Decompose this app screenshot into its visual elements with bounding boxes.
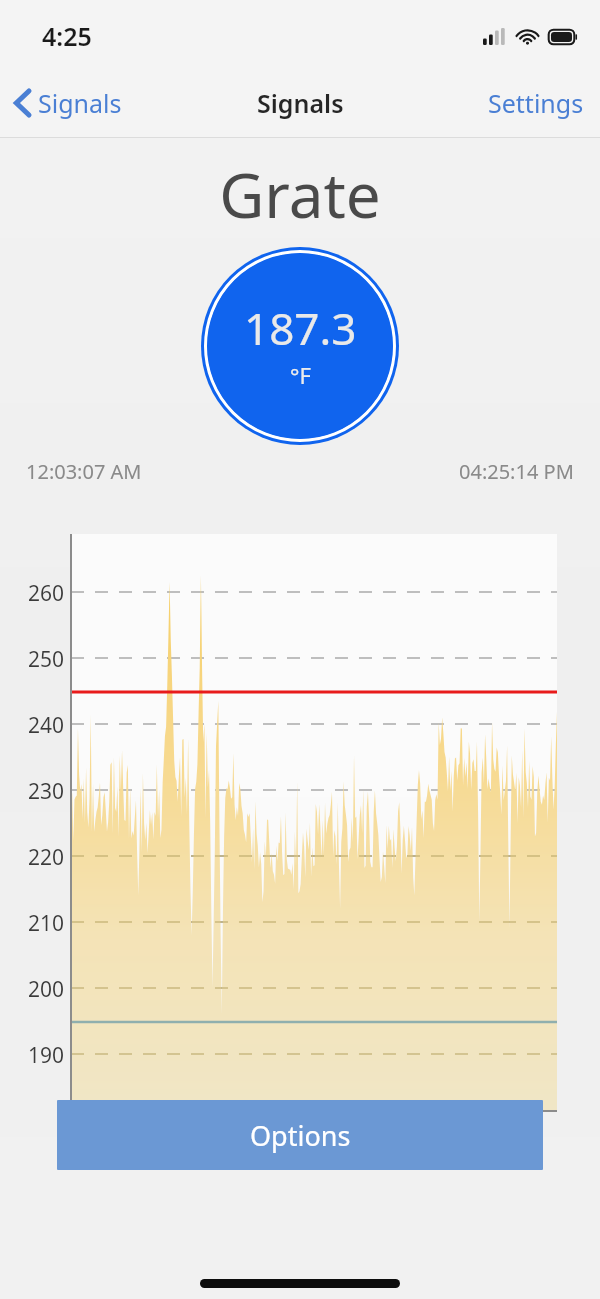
staticText: 220 (14, 843, 64, 872)
staticText: Grate (0, 152, 600, 236)
staticText: 04:25:14 PM (459, 458, 574, 485)
staticText: 250 (14, 645, 64, 674)
staticText: Signals (257, 86, 344, 120)
staticText: 200 (14, 975, 64, 1004)
staticText: 190 (14, 1041, 64, 1070)
staticText: Signals (38, 86, 122, 120)
staticText: 4:25 (42, 19, 92, 53)
button[interactable]: Options (57, 1100, 543, 1170)
staticText: 260 (14, 579, 64, 608)
staticText: 210 (14, 909, 64, 938)
staticText: 240 (14, 711, 64, 740)
staticText: Options (250, 1117, 351, 1154)
staticText: 187.3 (244, 298, 357, 358)
button[interactable]: Current temperature 187.3 degrees Fahren… (200, 246, 400, 446)
button[interactable]: Settings (472, 76, 600, 130)
staticText: °F (290, 360, 311, 390)
staticText: 12:03:07 AM (26, 458, 142, 485)
button[interactable]: Signals (0, 78, 134, 128)
staticText: Settings (488, 86, 584, 120)
staticText: 230 (14, 777, 64, 806)
